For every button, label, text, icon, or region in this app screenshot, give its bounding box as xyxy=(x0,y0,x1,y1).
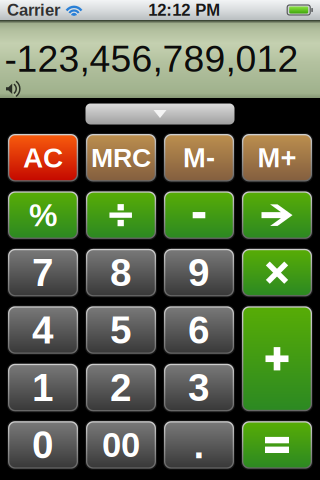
staticText: 4 xyxy=(32,308,54,352)
staticText: . xyxy=(193,423,204,467)
button[interactable]: Equals xyxy=(241,420,313,470)
button[interactable]: . xyxy=(163,420,235,470)
button[interactable]: Backspace xyxy=(241,190,313,240)
button[interactable]: Plus xyxy=(241,305,313,412)
staticText: 9 xyxy=(188,251,210,294)
button[interactable]: 00 xyxy=(85,420,157,470)
button[interactable]: M+ xyxy=(241,133,313,182)
button[interactable]: 0 xyxy=(7,420,79,470)
button[interactable]: M- xyxy=(163,133,235,182)
staticText: 5 xyxy=(110,308,132,352)
staticText: 1 xyxy=(32,366,54,409)
button[interactable]: 9 xyxy=(163,248,235,297)
button[interactable]: 6 xyxy=(163,305,235,355)
button[interactable]: AC xyxy=(7,133,79,182)
staticText: % xyxy=(29,197,57,233)
staticText: M+ xyxy=(257,142,296,173)
staticText: 12:12 PM xyxy=(148,1,220,19)
button[interactable]: 8 xyxy=(85,248,157,297)
button[interactable]: MRC xyxy=(85,133,157,182)
staticText: MRC xyxy=(91,143,151,173)
staticText: 2 xyxy=(110,366,132,409)
button[interactable]: 7 xyxy=(7,248,79,297)
staticText: 3 xyxy=(188,366,210,409)
staticText: M- xyxy=(183,142,215,173)
button[interactable]: Minus xyxy=(163,190,235,240)
button[interactable]: 4 xyxy=(7,305,79,355)
button[interactable]: 5 xyxy=(85,305,157,355)
button[interactable]: 3 xyxy=(163,363,235,412)
button[interactable]: Hide keypad xyxy=(85,103,234,124)
staticText: Carrier xyxy=(7,1,60,19)
button[interactable]: % xyxy=(7,190,79,240)
staticText: 8 xyxy=(110,251,132,294)
button[interactable]: 2 xyxy=(85,363,157,412)
staticText: AC xyxy=(23,142,63,173)
button[interactable]: Multiply xyxy=(241,248,313,297)
button[interactable]: Divide xyxy=(85,190,157,240)
staticText: -123,456,789,012 xyxy=(4,38,298,80)
staticText: 6 xyxy=(188,308,210,352)
staticText: 00 xyxy=(102,426,140,464)
button[interactable]: 1 xyxy=(7,363,79,412)
staticText: 0 xyxy=(32,423,54,467)
staticText: 7 xyxy=(32,251,54,294)
